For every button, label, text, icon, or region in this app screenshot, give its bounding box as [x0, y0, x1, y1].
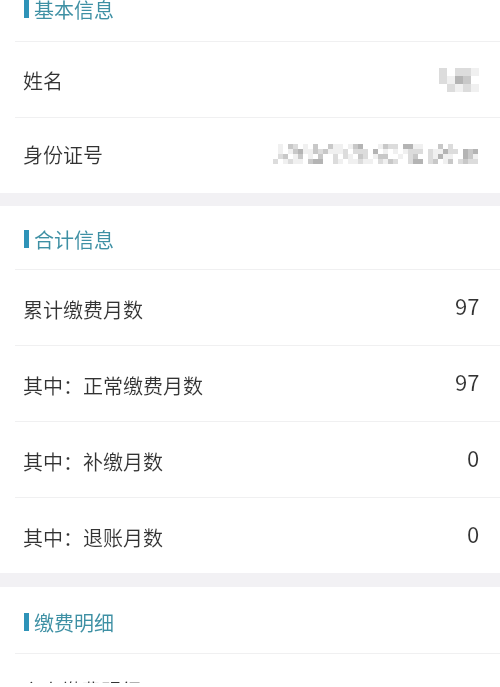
staticText: 其中：退账月数	[23, 523, 163, 552]
other: 已隐藏的个人信息	[273, 144, 476, 162]
button[interactable]: 累计缴费月数	[0, 270, 500, 345]
button[interactable]: 其中：正常缴费月数	[0, 346, 500, 421]
button[interactable]: 身份证号	[0, 118, 500, 193]
button[interactable]: 合计信息	[0, 206, 500, 269]
other: 已隐藏的个人信息	[439, 68, 476, 91]
staticText: 其中：正常缴费月数	[23, 371, 203, 400]
button[interactable]: 缴费明细	[0, 587, 500, 653]
staticText: 姓名	[23, 66, 63, 95]
staticText: 97	[455, 365, 480, 397]
button[interactable]: 基本信息	[0, 0, 500, 41]
staticText: 97	[455, 289, 480, 321]
staticText: 合计信息	[34, 225, 114, 254]
staticText: 累计缴费月数	[23, 295, 143, 324]
staticText: 身份证号	[23, 140, 103, 169]
staticText: 0	[467, 517, 480, 549]
staticText: 个人缴费明细	[21, 676, 141, 683]
button[interactable]: 其中：补缴月数	[0, 422, 500, 497]
staticText: 其中：补缴月数	[23, 447, 163, 476]
staticText: 0	[467, 441, 480, 473]
staticText: 基本信息	[34, 0, 114, 24]
button[interactable]: 其中：退账月数	[0, 498, 500, 573]
button[interactable]: 姓名	[0, 42, 500, 117]
staticText: 缴费明细	[34, 608, 114, 637]
